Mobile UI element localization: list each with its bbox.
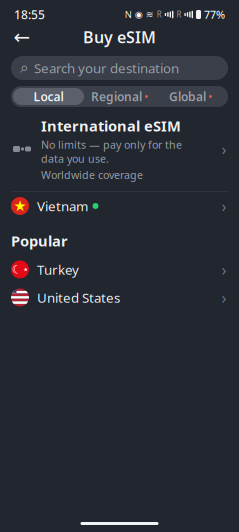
staticText: Turkey — [37, 261, 79, 278]
staticText: ☾ — [12, 263, 23, 276]
staticText: International eSIM — [41, 116, 181, 135]
staticText: › — [221, 195, 226, 217]
staticText: Regional — [91, 88, 142, 104]
staticText: Popular — [11, 231, 68, 250]
button[interactable]: ☾ — [0, 255, 239, 283]
staticText: United States — [37, 289, 120, 306]
staticText: R — [157, 9, 162, 20]
staticText: Buy eSIM — [83, 26, 156, 48]
button[interactable]: Afghanistan — [0, 515, 239, 532]
staticText: › — [221, 287, 226, 308]
staticText: › — [221, 138, 226, 160]
button[interactable]: United States — [0, 283, 239, 311]
button[interactable]: Local — [13, 88, 84, 105]
staticText: N — [125, 8, 132, 21]
button[interactable]: ★ — [0, 192, 239, 220]
staticText: ★ — [13, 198, 26, 214]
staticText: 18:55 — [14, 6, 45, 22]
staticText: R — [176, 9, 181, 20]
staticText: › — [221, 259, 226, 280]
staticText: Local — [33, 88, 63, 104]
staticText: ≋ — [146, 9, 154, 20]
button[interactable]: International eSIM — [0, 107, 239, 191]
staticText: Worldwide coverage — [41, 168, 143, 182]
button[interactable]: Regional — [84, 88, 155, 105]
staticText: No limits — pay only for the data you us… — [41, 137, 182, 166]
staticText: ← — [13, 26, 30, 48]
staticText: ◉ — [135, 9, 143, 20]
staticText: ★ — [23, 266, 28, 272]
staticText: ⌕ — [20, 60, 29, 76]
staticText: Afghanistan — [37, 520, 111, 532]
staticText: 77% — [204, 7, 225, 22]
staticText: Search your destination — [34, 59, 179, 77]
button[interactable]: Back — [9, 24, 35, 50]
button[interactable]: Global — [155, 88, 226, 105]
staticText: Vietnam — [37, 197, 88, 215]
staticText: Global — [169, 88, 206, 104]
button[interactable]: ⌕ — [11, 56, 228, 80]
